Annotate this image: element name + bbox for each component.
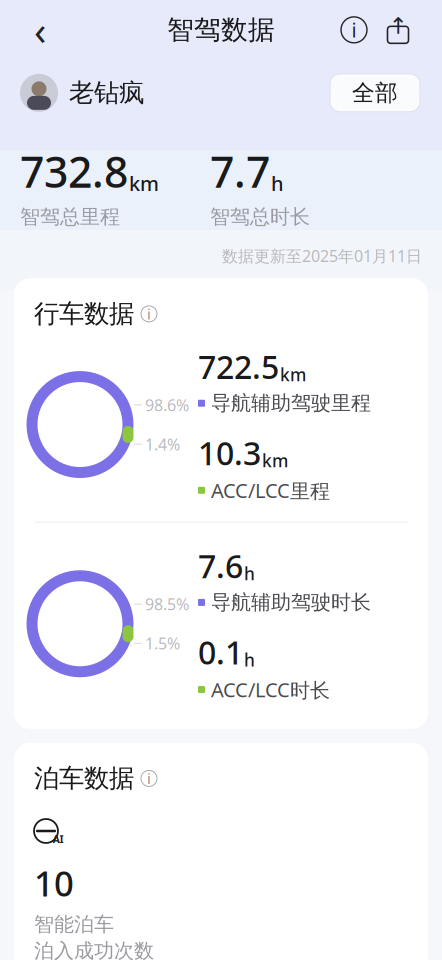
staticText: i [147,769,151,788]
staticText: 7.7 [210,143,270,199]
staticText: 全部 [352,79,398,107]
staticText: 智驾总里程 [20,204,120,229]
staticText: h [271,170,284,196]
staticText: ‹ [34,3,46,56]
staticText: AI [52,832,63,846]
button[interactable]: 关于行车数据 [141,306,157,322]
button[interactable]: 返回 [18,8,62,52]
staticText: 7.6 [198,545,243,587]
staticText: km [262,449,288,472]
staticText: 0.1 [198,631,243,673]
staticText: 泊车数据 [34,763,134,794]
staticText: ACC/LCC时长 [211,676,330,703]
staticText: 泊入成功次数 [34,939,154,960]
staticText: 732.8 [20,143,128,199]
staticText: h [244,562,255,585]
staticText: 10.3 [198,431,261,474]
button[interactable]: 老钻疯 [20,74,144,112]
staticText: 导航辅助驾驶时长 [211,590,371,615]
staticText: 老钻疯 [69,77,144,108]
staticText: 智驾总时长 [210,204,310,229]
staticText: i [147,304,151,324]
staticText: 10 [34,860,74,906]
button[interactable]: 分享 [376,8,420,52]
staticText: 数据更新至2025年01月11日 [222,245,422,266]
staticText: ACC/LCC里程 [211,477,330,504]
staticText: 1.5% [145,633,180,654]
staticText: i [351,17,356,43]
staticText: km [129,170,159,196]
button[interactable]: 全部 [330,74,420,112]
staticText: 722.5 [198,345,279,388]
button[interactable]: 关于泊车数据 [141,770,157,786]
staticText: 行车数据 [34,298,134,329]
staticText: 1.4% [145,433,180,455]
staticText: 导航辅助驾驶里程 [211,391,371,415]
staticText: km [280,363,306,386]
staticText: 智能泊车 [34,912,114,937]
staticText: 智驾数据 [167,13,275,46]
button[interactable]: 说明 [332,8,376,52]
staticText: h [244,648,255,671]
staticText: ↑ [388,13,407,39]
staticText: 98.5% [145,593,189,615]
staticText: 98.6% [145,394,189,415]
